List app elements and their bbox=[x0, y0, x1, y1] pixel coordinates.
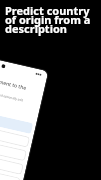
button[interactable] bbox=[0, 149, 24, 175]
button[interactable] bbox=[0, 122, 30, 148]
button[interactable] bbox=[0, 135, 27, 161]
button[interactable] bbox=[0, 108, 33, 134]
button[interactable] bbox=[0, 163, 21, 180]
staticText: Select a garment and optionally add bbox=[0, 87, 24, 102]
staticText: Predict country of origin from a descrip… bbox=[5, 3, 97, 36]
staticText: Add a garment to the bbox=[0, 73, 28, 92]
